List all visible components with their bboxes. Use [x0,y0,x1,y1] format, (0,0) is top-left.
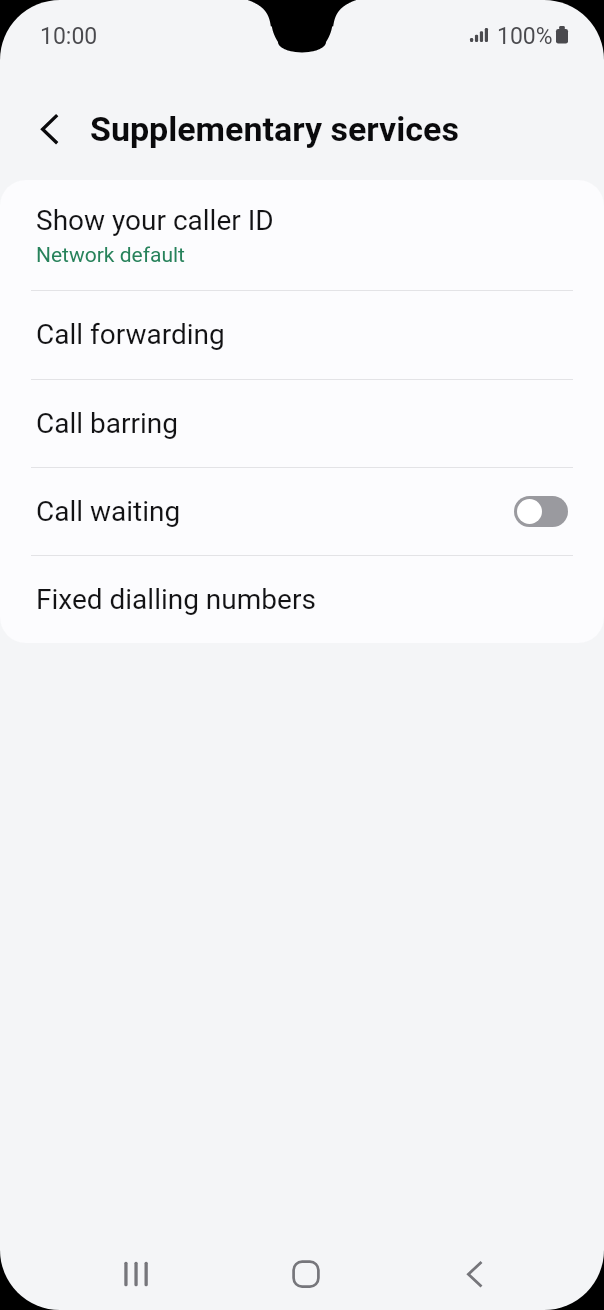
button[interactable]: Navigate up [26,105,74,153]
staticText: Network default [36,242,185,267]
staticText: 100% [497,23,553,50]
staticText: Supplementary services [90,109,459,149]
button[interactable]: Show your caller ID [0,180,604,290]
staticText: Show your caller ID [36,204,274,237]
staticText: Call barring [36,407,178,440]
button[interactable]: Home [264,1233,348,1310]
button[interactable]: Back [433,1233,517,1310]
button[interactable]: Fixed dialling numbers [0,555,604,643]
staticText: Call forwarding [36,318,225,351]
staticText: Fixed dialling numbers [36,583,316,616]
staticText: Call waiting [36,495,181,528]
button[interactable]: Call barring [0,379,604,468]
button[interactable]: Call forwarding [0,290,604,379]
button[interactable]: Call waiting [0,467,604,555]
button[interactable]: Recent apps [94,1233,178,1310]
staticText: 10:00 [40,23,98,50]
button[interactable]: Call waiting, off [514,496,568,527]
